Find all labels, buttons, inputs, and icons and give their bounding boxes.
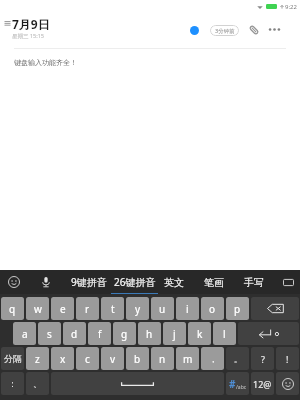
button[interactable]: 12@	[251, 372, 274, 395]
staticText: ?	[261, 353, 265, 365]
button[interactable]: 英文	[162, 270, 185, 294]
button[interactable]: More options	[266, 21, 283, 38]
staticText: j	[173, 327, 176, 341]
button[interactable]: s	[38, 322, 61, 345]
button[interactable]: 笔画	[202, 270, 225, 294]
button[interactable]: b	[126, 347, 149, 370]
button[interactable]: k	[188, 322, 211, 345]
button[interactable]: i	[176, 297, 199, 320]
button[interactable]: r	[76, 297, 99, 320]
button[interactable]: q	[1, 297, 24, 320]
staticText: #	[229, 377, 236, 391]
button[interactable]: 手写	[242, 270, 265, 294]
staticText: b	[134, 352, 141, 366]
staticText: h	[146, 327, 153, 341]
staticText: k	[197, 327, 203, 341]
button[interactable]: v	[101, 347, 124, 370]
staticText: 分隔	[4, 353, 22, 364]
button[interactable]: 9键拼音	[69, 270, 108, 294]
staticText: o	[209, 302, 216, 316]
staticText: 星期三 15:15	[12, 32, 44, 40]
staticText: d	[71, 327, 78, 341]
staticText: i	[186, 302, 189, 316]
staticText: ：	[8, 378, 17, 389]
button[interactable]: c	[76, 347, 99, 370]
button[interactable]: 分隔	[1, 347, 24, 370]
staticText: n	[159, 352, 166, 366]
button[interactable]: Symbols	[226, 372, 249, 395]
staticText: y	[135, 302, 141, 316]
button[interactable]: n	[151, 347, 174, 370]
button[interactable]: t	[101, 297, 124, 320]
staticText: 7月9日	[12, 16, 50, 32]
button[interactable]: Emoticons	[276, 372, 299, 395]
staticText: p	[234, 302, 241, 316]
staticText: !	[286, 353, 289, 365]
button[interactable]: u	[151, 297, 174, 320]
button[interactable]: p	[226, 297, 249, 320]
staticText: 、	[33, 378, 42, 389]
button[interactable]: l	[213, 322, 236, 345]
button[interactable]: Sync status	[186, 22, 202, 38]
staticText: a	[22, 327, 28, 341]
button[interactable]: ，	[201, 347, 224, 370]
button[interactable]: a	[13, 322, 36, 345]
staticText: 9键拼音	[71, 275, 107, 289]
button[interactable]: e	[51, 297, 74, 320]
button[interactable]: Keyboard layout	[279, 273, 297, 291]
button[interactable]: y	[126, 297, 149, 320]
button[interactable]: h	[138, 322, 161, 345]
button[interactable]: w	[26, 297, 49, 320]
button[interactable]: !	[276, 347, 299, 370]
button[interactable]: ?	[251, 347, 274, 370]
staticText: ，	[209, 354, 217, 364]
button[interactable]: 、	[26, 372, 49, 395]
button[interactable]: ：	[1, 372, 24, 395]
staticText: g	[121, 327, 128, 341]
staticText: r	[85, 302, 90, 316]
button[interactable]: o	[201, 297, 224, 320]
staticText: v	[110, 352, 116, 366]
staticText: 英文	[164, 276, 184, 289]
staticText: 12@	[253, 378, 272, 390]
staticText: 手写	[244, 276, 264, 289]
staticText: m	[183, 352, 193, 366]
staticText: 笔画	[204, 276, 224, 289]
staticText: c	[85, 352, 90, 366]
button[interactable]: 26键拼音	[111, 270, 158, 294]
staticText: l	[223, 327, 226, 341]
button[interactable]: d	[63, 322, 86, 345]
button[interactable]: m	[176, 347, 199, 370]
staticText: t	[111, 302, 115, 316]
button[interactable]: Voice input	[36, 272, 56, 292]
staticText: e	[60, 302, 66, 316]
staticText: w	[34, 302, 42, 316]
button[interactable]: 。	[226, 347, 249, 370]
button[interactable]: f	[88, 322, 111, 345]
staticText: /abc	[236, 384, 247, 391]
staticText: 键盘输入功能齐全！	[14, 58, 77, 67]
button[interactable]: x	[51, 347, 74, 370]
button[interactable]: z	[26, 347, 49, 370]
button[interactable]: 3分钟前	[210, 25, 239, 36]
staticText: s	[47, 327, 52, 341]
staticText: 3分钟前	[215, 27, 235, 35]
staticText: f	[98, 327, 102, 341]
button[interactable]: Space	[51, 372, 224, 395]
button[interactable]: Enter	[238, 322, 299, 345]
button[interactable]: Attach	[245, 21, 262, 38]
staticText: u	[159, 302, 166, 316]
staticText: q	[9, 302, 16, 316]
staticText: 26键拼音	[114, 275, 156, 289]
staticText: z	[35, 352, 40, 366]
staticText: 9:22	[285, 3, 297, 11]
button[interactable]: Emoji	[4, 272, 24, 292]
button[interactable]: Backspace	[251, 297, 299, 320]
button[interactable]: g	[113, 322, 136, 345]
staticText: 。	[234, 354, 242, 364]
button[interactable]: j	[163, 322, 186, 345]
staticText: x	[60, 352, 66, 366]
